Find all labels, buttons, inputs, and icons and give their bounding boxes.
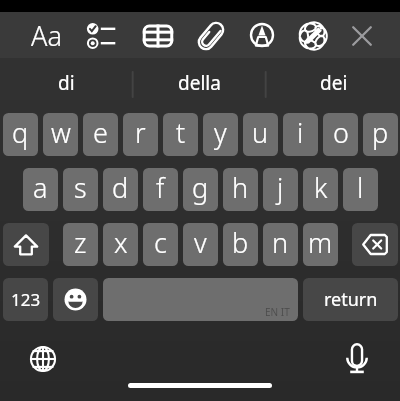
- button[interactable]: v: [183, 223, 218, 266]
- staticText: i: [297, 114, 304, 151]
- staticText: j: [277, 169, 284, 206]
- staticText: della: [178, 70, 221, 96]
- button[interactable]: Text format: [23, 12, 69, 58]
- button[interactable]: f: [143, 168, 178, 211]
- staticText: x: [114, 224, 128, 261]
- button[interactable]: Space: [103, 278, 298, 321]
- staticText: q: [12, 114, 29, 151]
- button[interactable]: k: [303, 168, 338, 211]
- button[interactable]: i: [283, 113, 318, 156]
- button[interactable]: Checklist: [81, 13, 127, 59]
- button[interactable]: t: [163, 113, 198, 156]
- button[interactable]: di: [0, 58, 133, 104]
- button[interactable]: s: [63, 168, 98, 211]
- button[interactable]: Table: [135, 13, 181, 59]
- staticText: l: [357, 169, 364, 206]
- button[interactable]: d: [103, 168, 138, 211]
- button[interactable]: h: [223, 168, 258, 211]
- staticText: dei: [320, 70, 348, 96]
- button[interactable]: 123: [3, 278, 48, 321]
- button[interactable]: n: [263, 223, 298, 266]
- button[interactable]: r: [123, 113, 158, 156]
- button[interactable]: Scribble: [290, 13, 336, 59]
- button[interactable]: della: [133, 58, 266, 104]
- staticText: g: [192, 169, 209, 206]
- staticText: v: [194, 224, 207, 261]
- staticText: o: [333, 114, 349, 151]
- button[interactable]: z: [63, 223, 98, 266]
- staticText: s: [74, 169, 87, 206]
- button[interactable]: return: [303, 278, 398, 321]
- staticText: t: [176, 114, 186, 151]
- button[interactable]: m: [303, 223, 338, 266]
- staticText: m: [308, 224, 333, 261]
- button[interactable]: Backspace: [352, 223, 398, 266]
- button[interactable]: u: [243, 113, 278, 156]
- staticText: y: [214, 114, 227, 151]
- staticText: f: [156, 169, 165, 206]
- button[interactable]: a: [23, 168, 58, 211]
- staticText: k: [314, 169, 328, 206]
- button[interactable]: Close: [339, 13, 385, 59]
- staticText: return: [324, 287, 378, 312]
- button[interactable]: dei: [267, 58, 400, 104]
- button[interactable]: Dictation: [335, 335, 379, 379]
- button[interactable]: Next keyboard: [21, 337, 65, 381]
- staticText: r: [135, 114, 146, 151]
- staticText: z: [74, 224, 87, 261]
- button[interactable]: w: [43, 113, 78, 156]
- staticText: EN IT: [265, 305, 290, 319]
- staticText: di: [58, 70, 75, 96]
- button[interactable]: x: [103, 223, 138, 266]
- staticText: 123: [11, 288, 41, 311]
- button[interactable]: j: [263, 168, 298, 211]
- button[interactable]: Markup: [239, 12, 285, 58]
- staticText: u: [252, 114, 269, 151]
- staticText: n: [272, 224, 289, 261]
- button[interactable]: c: [143, 223, 178, 266]
- staticText: h: [232, 169, 249, 206]
- staticText: b: [232, 224, 249, 261]
- staticText: a: [33, 169, 48, 206]
- staticText: d: [112, 169, 129, 206]
- staticText: e: [93, 114, 108, 151]
- button[interactable]: o: [323, 113, 358, 156]
- button[interactable]: b: [223, 223, 258, 266]
- button[interactable]: g: [183, 168, 218, 211]
- button[interactable]: p: [363, 113, 398, 156]
- button[interactable]: Emoji: [53, 278, 98, 321]
- button[interactable]: e: [83, 113, 118, 156]
- staticText: w: [51, 114, 71, 151]
- staticText: p: [372, 114, 389, 151]
- staticText: Aa: [31, 17, 62, 54]
- button[interactable]: q: [3, 113, 38, 156]
- button[interactable]: Attach file: [188, 13, 234, 59]
- staticText: c: [154, 224, 167, 261]
- button[interactable]: l: [343, 168, 378, 211]
- button[interactable]: Shift: [3, 223, 49, 266]
- button[interactable]: y: [203, 113, 238, 156]
